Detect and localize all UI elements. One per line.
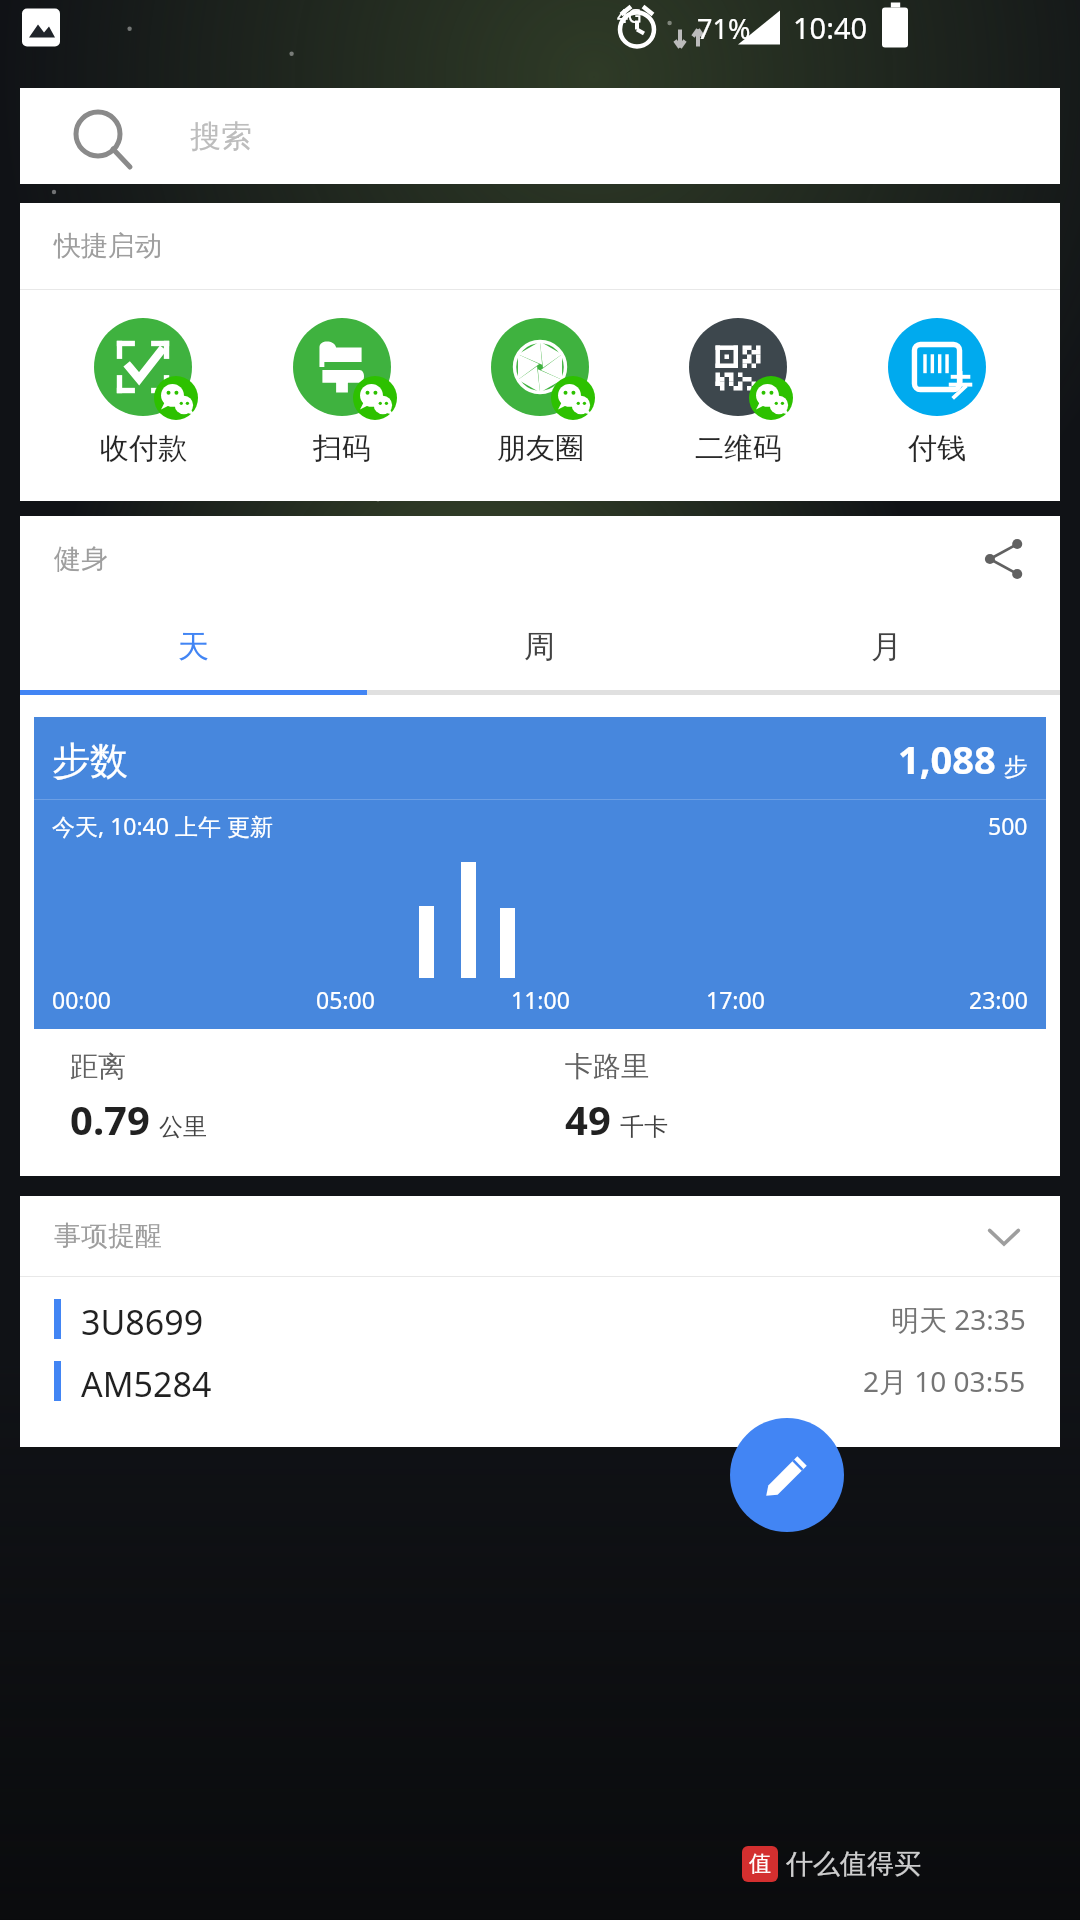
staticText: 周	[524, 627, 555, 666]
button[interactable]: Share	[972, 527, 1036, 591]
staticText: 搜索	[190, 117, 252, 156]
staticText: 月	[871, 627, 902, 666]
staticText: 扫码	[313, 430, 371, 467]
staticText: 23:00	[969, 984, 1028, 1015]
button[interactable]: 收付款	[68, 318, 218, 467]
button[interactable]: 搜索	[20, 88, 1060, 184]
button[interactable]: 快捷启动	[20, 203, 1060, 289]
button[interactable]: 3U8699	[54, 1299, 1026, 1339]
button[interactable]: Compose	[730, 1418, 844, 1532]
staticText: 二维码	[695, 430, 782, 467]
button[interactable]: AM5284	[54, 1361, 1026, 1401]
staticText: 步	[1004, 752, 1028, 782]
staticText: 事项提醒	[54, 1219, 162, 1253]
button[interactable]: 天	[20, 602, 366, 690]
staticText: 10:40	[793, 8, 868, 47]
staticText: 朋友圈	[497, 430, 584, 467]
button[interactable]: 二维码	[663, 318, 813, 467]
button[interactable]: 月	[713, 602, 1060, 690]
staticText: 距离	[70, 1049, 126, 1084]
staticText: 天	[178, 627, 209, 666]
staticText: 健身	[54, 542, 108, 576]
staticText: 0.79	[70, 1092, 150, 1146]
button[interactable]: 步数	[34, 717, 1046, 1029]
staticText: 卡路里	[565, 1049, 649, 1084]
staticText: 值	[749, 1850, 771, 1878]
staticText: 千卡	[620, 1112, 668, 1142]
staticText: 快捷启动	[54, 229, 162, 263]
staticText: 公里	[159, 1112, 207, 1142]
staticText: 付钱	[908, 430, 966, 467]
staticText: 1,088	[898, 733, 996, 785]
staticText: 11:00	[511, 984, 570, 1015]
button[interactable]: 朋友圈	[465, 318, 615, 467]
staticText: 71%	[697, 10, 751, 47]
staticText: 500	[988, 810, 1028, 841]
staticText: 明天 23:35	[891, 1300, 1026, 1338]
staticText: 今天, 10:40 上午 更新	[52, 810, 273, 841]
button[interactable]: 事项提醒	[20, 1196, 1060, 1276]
staticText: 3U8699	[81, 1299, 204, 1339]
button[interactable]: 扫码	[267, 318, 417, 467]
staticText: 17:00	[706, 984, 765, 1015]
staticText: 05:00	[316, 984, 375, 1015]
staticText: 收付款	[100, 430, 187, 467]
staticText: 2月 10 03:55	[863, 1362, 1026, 1400]
button[interactable]: 周	[366, 602, 713, 690]
staticText: AM5284	[81, 1361, 212, 1401]
staticText: 49	[565, 1092, 611, 1146]
staticText: 什么值得买	[786, 1847, 921, 1881]
button[interactable]: 付钱	[862, 318, 1012, 467]
button[interactable]: Collapse	[974, 1206, 1034, 1266]
staticText: 步数	[52, 737, 128, 785]
staticText: 00:00	[52, 984, 111, 1015]
staticText: 4G	[617, 3, 642, 29]
